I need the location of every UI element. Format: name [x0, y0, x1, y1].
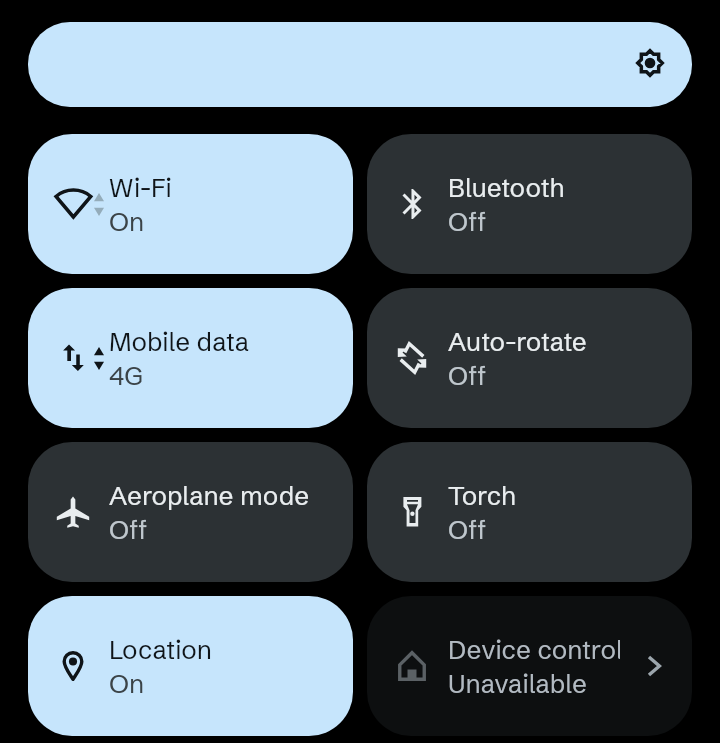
staticText: Off [109, 514, 147, 546]
staticText: 4G [109, 360, 143, 392]
staticText: On [109, 206, 145, 238]
button[interactable]: Bluetooth [367, 134, 692, 274]
staticText: Off [448, 514, 486, 546]
button[interactable]: Device controls [367, 596, 692, 736]
staticText: Unavailable [448, 668, 587, 700]
button[interactable]: Location [28, 596, 353, 736]
staticText: Auto-rotate [448, 326, 587, 358]
staticText: Aeroplane mode [109, 480, 310, 512]
staticText: Off [448, 360, 486, 392]
staticText: Off [448, 206, 486, 238]
staticText: Torch [448, 480, 516, 512]
button[interactable]: Mobile data [28, 288, 353, 428]
button[interactable]: Auto-rotate [367, 288, 692, 428]
button[interactable]: Aeroplane mode [28, 442, 353, 582]
staticText: On [109, 668, 145, 700]
button[interactable]: Wi-Fi [28, 134, 353, 274]
staticText: Location [109, 634, 212, 666]
button[interactable]: Torch [367, 442, 692, 582]
staticText: Wi-Fi [109, 172, 172, 204]
button[interactable]: Brightness [28, 22, 692, 107]
staticText: Device controls [448, 634, 620, 666]
other: Open device controls [648, 657, 660, 675]
staticText: Bluetooth [448, 172, 565, 204]
staticText: Mobile data [109, 326, 250, 358]
